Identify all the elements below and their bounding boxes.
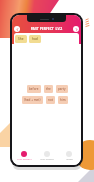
staticText: before: [29, 87, 39, 91]
button[interactable]: before: [27, 85, 41, 93]
button[interactable]: PAST PERFECT: [13, 149, 35, 161]
button[interactable]: the: [44, 85, 53, 93]
staticText: not: [48, 98, 53, 102]
staticText: him: [60, 98, 66, 102]
staticText: the: [46, 87, 51, 91]
staticText: She: [18, 37, 24, 41]
button[interactable]: not: [46, 96, 55, 104]
staticText: party: [58, 87, 66, 91]
button[interactable]: PAST SIMPLE: [36, 149, 58, 161]
button[interactable]: him: [58, 96, 68, 104]
staticText: PAST PERFECT LV.2: [20, 26, 73, 31]
staticText: PAST SIMPLE: [40, 158, 54, 161]
button[interactable]: Next: [73, 26, 79, 32]
button[interactable]: had: [29, 35, 41, 43]
staticText: MORE: [66, 158, 73, 161]
staticText: (had + met): [24, 98, 41, 102]
staticText: had: [32, 37, 38, 41]
button[interactable]: MORE: [58, 149, 80, 161]
button[interactable]: (had + met): [22, 96, 43, 104]
button[interactable]: party: [56, 85, 68, 93]
button[interactable]: Back: [14, 26, 20, 32]
staticText: PAST PERFECT: [17, 158, 32, 161]
button[interactable]: She: [15, 35, 27, 43]
